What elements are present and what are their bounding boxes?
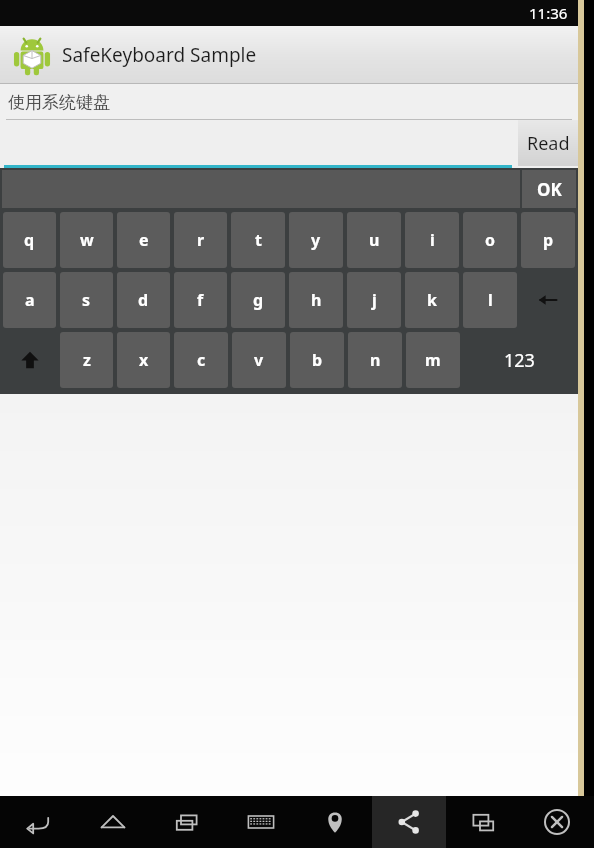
staticText: w	[80, 229, 94, 251]
button[interactable]: Split screen	[446, 796, 520, 848]
staticText: z	[83, 349, 91, 371]
button[interactable]: e	[117, 212, 170, 268]
button[interactable]: 使用系统键盘	[0, 84, 578, 120]
button[interactable]: y	[289, 212, 343, 268]
button[interactable]: Read	[518, 120, 578, 166]
button[interactable]: Location	[298, 796, 372, 848]
button[interactable]: i	[405, 212, 459, 268]
button[interactable]: a	[3, 272, 56, 328]
staticText: v	[254, 349, 264, 371]
staticText: SafeKeyboard Sample	[62, 42, 257, 68]
staticText: f	[197, 289, 204, 311]
button[interactable]: Keyboard	[224, 796, 298, 848]
staticText: p	[543, 229, 554, 251]
staticText: 11:36	[529, 3, 568, 23]
staticText: 使用系统键盘	[8, 92, 110, 113]
staticText: i	[430, 229, 435, 251]
button[interactable]: r	[174, 212, 227, 268]
button[interactable]: s	[60, 272, 113, 328]
button[interactable]: z	[60, 332, 113, 388]
staticText: h	[311, 289, 322, 311]
staticText: 123	[504, 348, 535, 373]
staticText: j	[372, 289, 377, 311]
button[interactable]	[0, 120, 516, 168]
button[interactable]: t	[231, 212, 285, 268]
button[interactable]: g	[231, 272, 285, 328]
button[interactable]: m	[406, 332, 460, 388]
staticText: n	[370, 349, 381, 371]
button[interactable]: Back	[0, 796, 75, 848]
button[interactable]: o	[463, 212, 517, 268]
button[interactable]: OK	[522, 170, 576, 208]
staticText: Read	[527, 131, 570, 156]
button[interactable]: h	[289, 272, 343, 328]
staticText: q	[24, 229, 35, 251]
staticText: d	[138, 289, 149, 311]
button[interactable]: Shift	[3, 332, 56, 388]
staticText: u	[369, 229, 380, 251]
staticText: e	[139, 229, 149, 251]
staticText: OK	[537, 178, 562, 201]
button[interactable]: Close	[520, 796, 594, 848]
button[interactable]: x	[117, 332, 170, 388]
staticText: y	[311, 229, 321, 251]
staticText: l	[488, 289, 493, 311]
button[interactable]: Backspace	[521, 272, 575, 328]
staticText: t	[255, 229, 262, 251]
button[interactable]: w	[60, 212, 113, 268]
staticText: a	[25, 289, 35, 311]
button[interactable]: l	[463, 272, 517, 328]
button[interactable]: n	[348, 332, 402, 388]
button[interactable]: u	[347, 212, 401, 268]
button[interactable]: Recents	[150, 796, 224, 848]
button[interactable]: d	[117, 272, 170, 328]
staticText: b	[312, 349, 323, 371]
button[interactable]: q	[3, 212, 56, 268]
button[interactable]: Share	[372, 796, 446, 848]
button[interactable]: 123	[464, 332, 575, 388]
staticText: o	[485, 229, 496, 251]
button[interactable]: f	[174, 272, 227, 328]
staticText: g	[253, 289, 264, 311]
button[interactable]: j	[347, 272, 401, 328]
button[interactable]: p	[521, 212, 575, 268]
staticText: m	[425, 349, 441, 371]
staticText: c	[197, 349, 206, 371]
staticText: s	[82, 289, 91, 311]
button[interactable]: Home	[75, 796, 150, 848]
staticText: x	[139, 349, 149, 371]
button[interactable]: k	[405, 272, 459, 328]
staticText: r	[197, 229, 205, 251]
button[interactable]: c	[174, 332, 228, 388]
button[interactable]: v	[232, 332, 286, 388]
staticText: k	[427, 289, 437, 311]
button[interactable]: b	[290, 332, 344, 388]
